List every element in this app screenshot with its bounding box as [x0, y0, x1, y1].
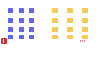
button[interactable]: Action 1 [52, 35, 58, 39]
button[interactable]: Item 5 [19, 18, 24, 23]
button[interactable]: Note 4 [52, 18, 58, 23]
button[interactable]: Note 5 [67, 18, 73, 23]
button[interactable]: Item 6 [29, 18, 34, 23]
button[interactable]: Item 4 [8, 18, 13, 23]
button[interactable]: Note 1 [52, 8, 58, 13]
button[interactable]: Note 2 [67, 8, 73, 13]
button[interactable]: Action 3 [82, 35, 88, 39]
button[interactable]: Logo [1, 38, 7, 44]
button[interactable]: Note 6 [82, 18, 88, 23]
button[interactable]: Note 8 [67, 27, 73, 32]
button[interactable]: Tab 1 [8, 35, 13, 39]
button[interactable]: Note 3 [82, 8, 88, 13]
button[interactable]: Tab 3 [29, 35, 34, 39]
button[interactable]: Item 8 [19, 27, 24, 32]
button[interactable]: Tab 2 [19, 35, 24, 39]
button[interactable]: Item 9 [29, 27, 34, 32]
button[interactable]: Note 7 [52, 27, 58, 32]
button[interactable]: Item 2 [19, 8, 24, 13]
button[interactable]: Note 9 [82, 27, 88, 32]
button[interactable]: Item 3 [29, 8, 34, 13]
button[interactable]: Item 7 [8, 27, 13, 32]
button[interactable]: Action 2 [67, 35, 73, 39]
button[interactable]: Item 1 [8, 8, 13, 13]
